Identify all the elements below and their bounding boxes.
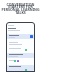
button[interactable] bbox=[7, 34, 34, 39]
button[interactable] bbox=[7, 59, 34, 64]
button[interactable] bbox=[7, 41, 34, 46]
button[interactable] bbox=[7, 53, 34, 58]
button[interactable] bbox=[7, 65, 34, 71]
staticText: CONVERSATION STARTERS FOR PERSONAL LEARN… bbox=[0, 2, 41, 15]
button[interactable] bbox=[7, 47, 34, 52]
